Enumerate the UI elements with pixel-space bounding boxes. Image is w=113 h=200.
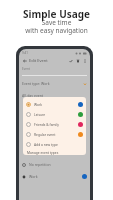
button[interactable]: Add a new type — [26, 139, 83, 149]
staticText: Event type: Work — [22, 81, 50, 86]
staticText: Event — [22, 67, 30, 71]
button[interactable]: More options — [81, 57, 88, 64]
button[interactable]: Regular event — [26, 129, 83, 139]
button[interactable]: No repetition — [22, 160, 87, 169]
button[interactable]: All-day event — [22, 91, 87, 100]
staticText: Manage event types — [27, 150, 59, 154]
staticText: All-day event — [22, 93, 44, 98]
staticText: Add a new type — [34, 142, 58, 146]
button[interactable]: Save — [67, 57, 74, 64]
staticText: 9:41 — [22, 51, 28, 55]
staticText: Edit Event — [29, 58, 48, 63]
button[interactable]: Leisure — [26, 109, 83, 119]
button[interactable]: Delete — [74, 57, 81, 64]
staticText: Simple Usage — [23, 7, 90, 21]
button[interactable]: Work — [22, 172, 87, 181]
staticText: Friends & family — [34, 122, 60, 126]
button[interactable]: Back — [21, 57, 28, 64]
staticText: No repetition — [29, 162, 51, 167]
staticText: Work — [34, 102, 43, 106]
staticText: Save time with easy navigation — [25, 18, 88, 35]
button[interactable]: Work — [26, 99, 83, 109]
button[interactable]: Event type: Work — [22, 79, 87, 88]
button[interactable]: Manage event types — [27, 149, 86, 155]
staticText: Regular event — [34, 132, 56, 136]
staticText: Work — [29, 174, 38, 179]
button[interactable]: Friends & family — [26, 119, 83, 129]
staticText: Leisure — [34, 112, 46, 116]
